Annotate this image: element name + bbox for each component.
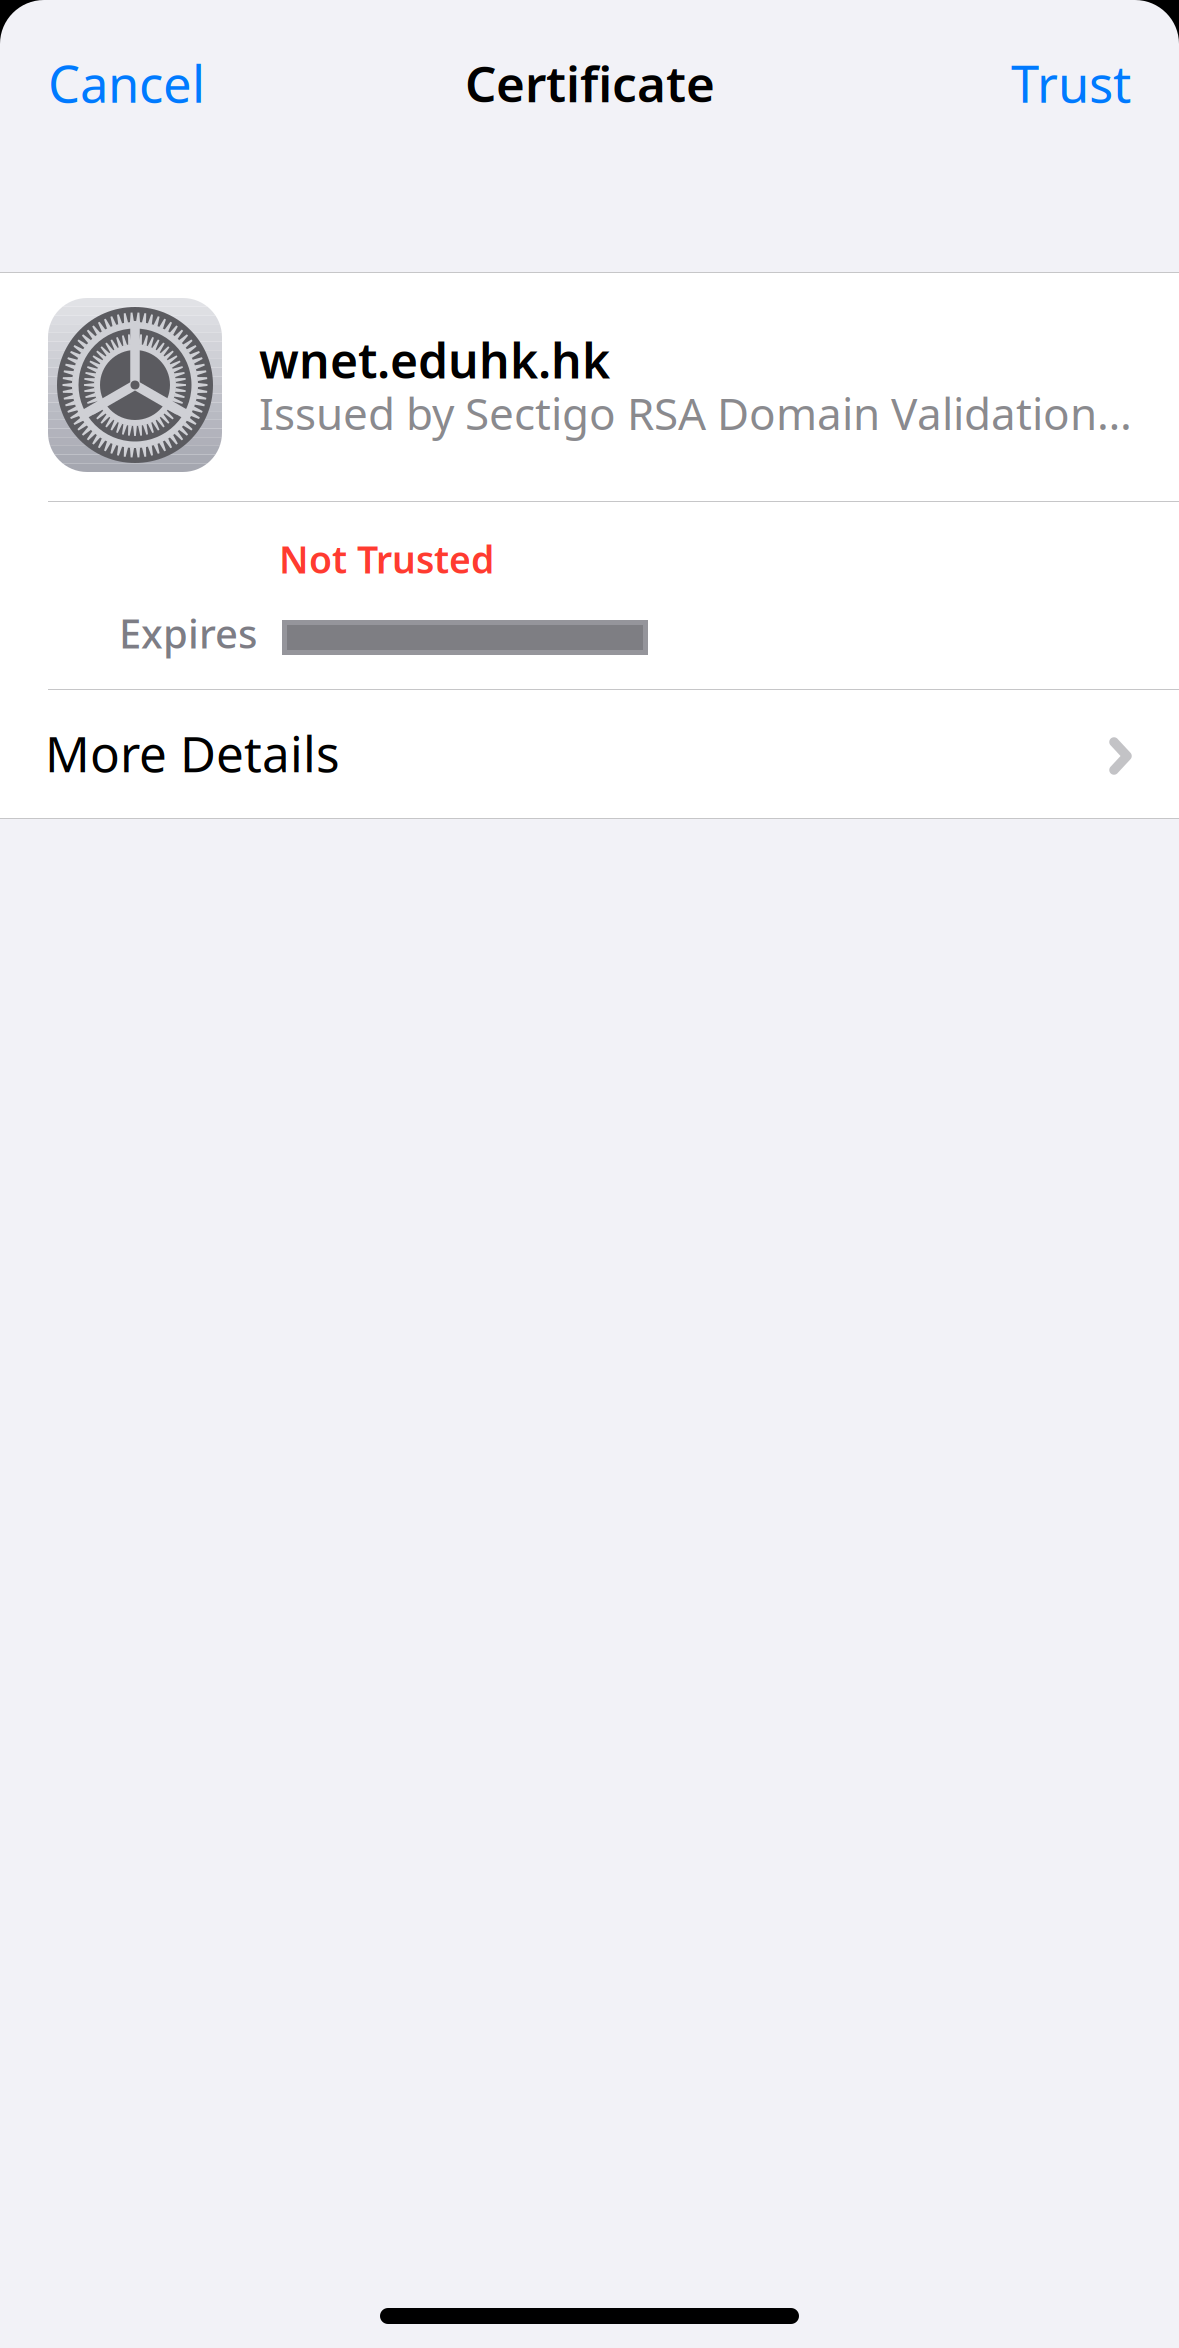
button[interactable]: Cancel: [48, 47, 248, 119]
button[interactable]: More Details: [0, 690, 1179, 818]
staticText: Expires: [119, 606, 257, 659]
staticText: More Details: [45, 720, 340, 786]
button[interactable]: Trust: [931, 47, 1131, 119]
staticText: Issued by Sectigo RSA Domain Validation …: [259, 384, 1137, 442]
staticText: Cancel: [48, 49, 205, 117]
staticText: Certificate: [465, 50, 715, 116]
staticText: Trust: [1011, 49, 1131, 117]
staticText: wnet.eduhk.hk: [259, 328, 610, 392]
staticText: Not Trusted: [279, 534, 494, 584]
